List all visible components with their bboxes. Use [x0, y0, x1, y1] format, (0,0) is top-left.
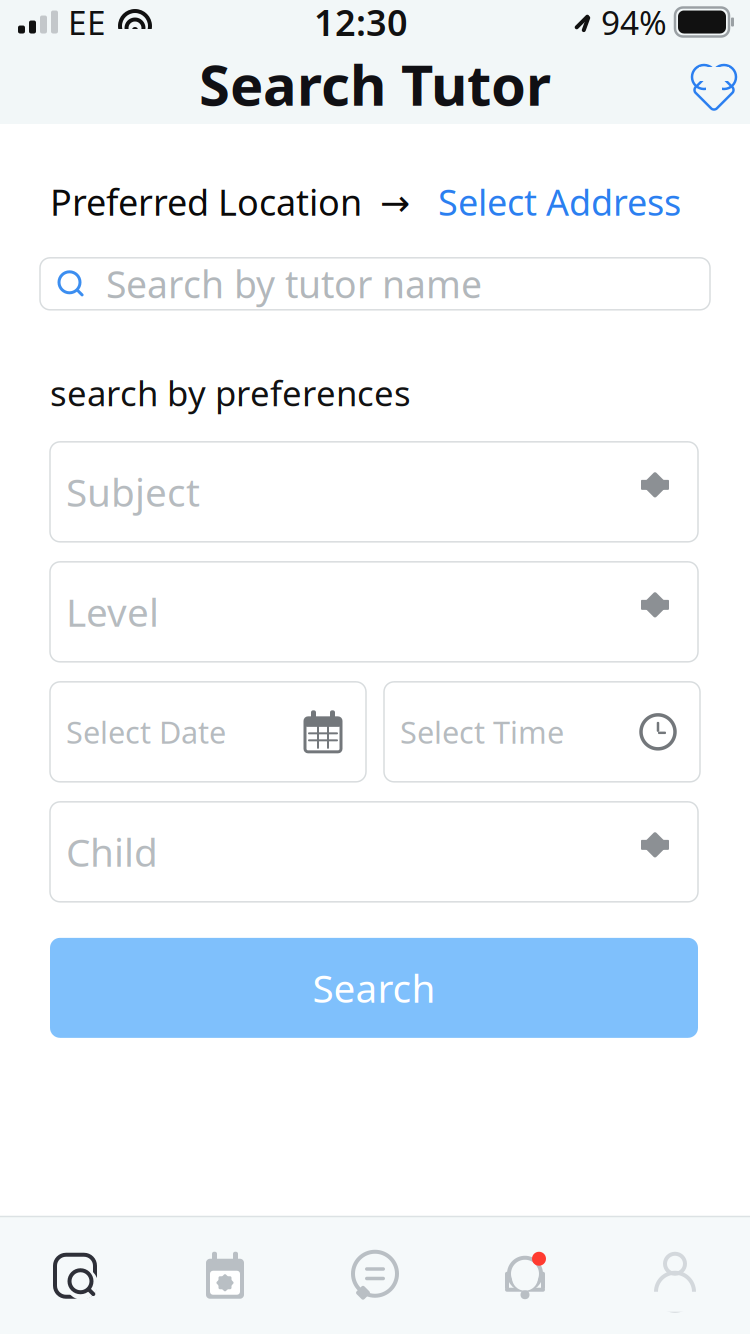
button[interactable]: Level	[50, 562, 698, 662]
button[interactable]: Child	[50, 802, 698, 902]
button[interactable]: Search	[0, 1217, 150, 1334]
staticText: Level	[66, 586, 159, 637]
staticText: Search	[312, 962, 435, 1013]
staticText: Subject	[66, 466, 200, 517]
button[interactable]: Favourites	[678, 48, 750, 120]
button[interactable]: Select Date	[50, 682, 366, 782]
staticText: Preferred Location →	[50, 178, 410, 226]
button[interactable]: Messages	[300, 1217, 450, 1334]
button[interactable]: Bookings	[150, 1217, 300, 1334]
staticText: Search by tutor name	[106, 259, 482, 309]
button[interactable]: Subject	[50, 442, 698, 542]
staticText: EE	[68, 0, 106, 44]
staticText: Child	[66, 826, 158, 877]
staticText: Select Time	[400, 711, 564, 752]
staticText: Select Address	[438, 178, 681, 226]
staticText: 94%	[601, 0, 667, 44]
staticText: search by preferences	[50, 370, 411, 416]
button[interactable]: Profile	[600, 1217, 750, 1334]
staticText: Select Date	[66, 711, 226, 752]
button[interactable]: Search	[50, 938, 698, 1038]
button[interactable]: Select Address	[410, 172, 681, 232]
staticText: Search Tutor	[199, 47, 551, 121]
button[interactable]: Notifications	[450, 1217, 600, 1334]
button[interactable]: Select Time	[384, 682, 700, 782]
button[interactable]: Search by tutor name	[40, 258, 710, 310]
staticText: 12:30	[314, 0, 408, 46]
